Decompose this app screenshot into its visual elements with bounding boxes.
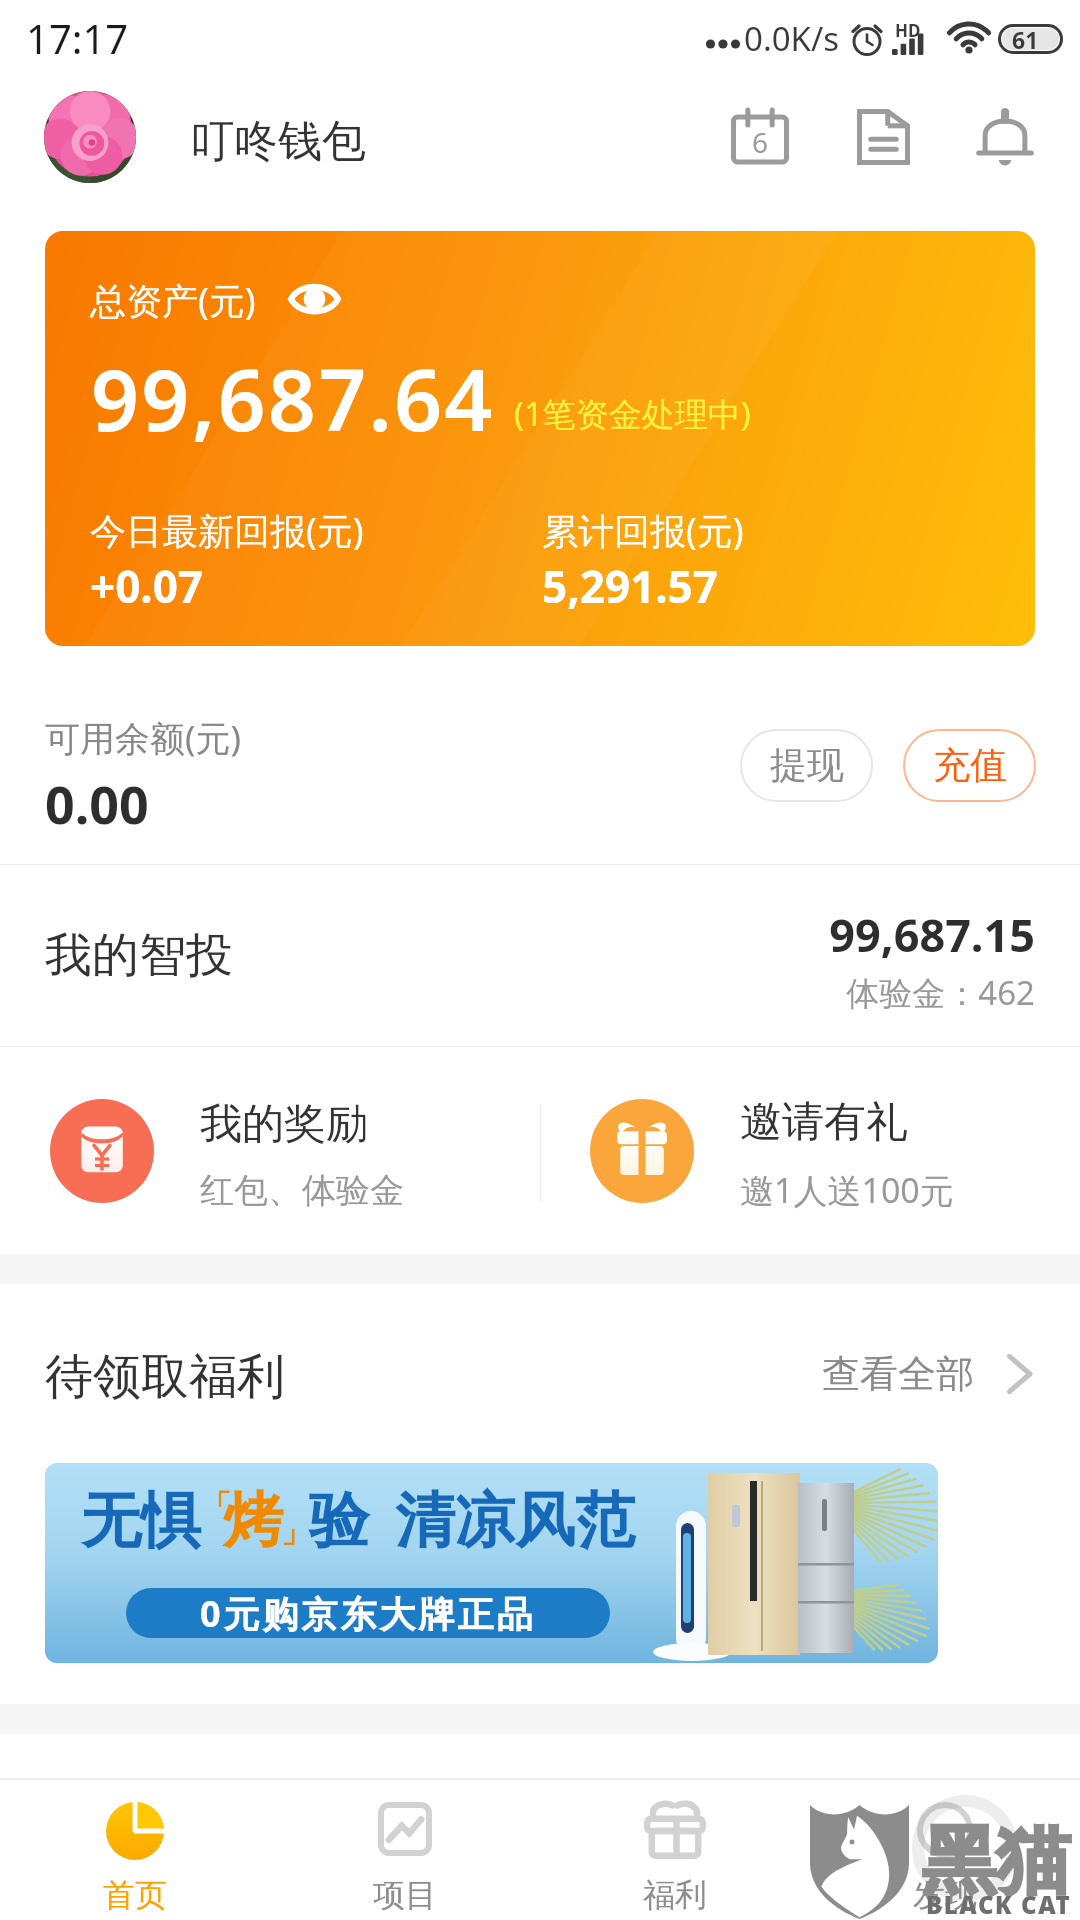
staticText: HD [895,19,921,42]
staticText: 验 [309,1483,369,1559]
staticText: BLACK CAT [926,1888,1072,1920]
staticText: 叮咚钱包 [190,114,366,169]
staticText: +0.07 [90,556,204,616]
staticText: 「 [201,1487,231,1525]
button[interactable]: 无惧 [45,1463,938,1663]
staticText: 总资产(元) [90,276,256,325]
staticText: 0元购京东大牌正品 [200,1589,536,1638]
button[interactable]: 福利 [540,1780,810,1920]
button[interactable]: 首页 [0,1780,270,1920]
button[interactable]: Toggle amount visibility [288,281,341,317]
staticText: 无惧 [81,1483,201,1559]
staticText: 烤 [223,1483,283,1559]
staticText: 我的智投 [45,926,233,985]
button[interactable]: 提现 [740,729,873,802]
staticText: 6 [752,123,769,161]
staticText: 可用余额(元) [45,714,242,762]
staticText: 5,291.57 [542,556,718,616]
staticText: 提现 [770,742,844,789]
staticText: 0.00 [45,768,149,839]
staticText: (1笔资金处理中) [514,391,751,436]
staticText: 邀请有礼 [740,1096,908,1149]
staticText: 充值 [933,742,1007,789]
staticText: 累计回报(元) [542,506,744,555]
staticText: 17:17 [26,11,129,65]
staticText: 查看全部 [822,1350,974,1398]
staticText: 体验金：462 [846,970,1035,1015]
button[interactable]: 项目 [270,1780,540,1920]
button[interactable]: 邀请有礼 [590,1047,1080,1254]
staticText: 我的奖励 [200,1098,368,1151]
button[interactable]: Calendar [719,96,801,178]
staticText: 」 [281,1513,311,1551]
staticText: 99,687.64 [91,341,495,455]
staticText: 黑猫 [922,1815,1070,1908]
staticText: 今日最新回报(元) [90,506,364,555]
button[interactable]: 发现 [810,1780,1080,1920]
button[interactable]: 查看全部 [822,1346,1036,1402]
staticText: 项目 [373,1875,437,1915]
staticText: 邀1人送100元 [740,1167,954,1213]
button[interactable]: Documents [842,96,924,178]
staticText: 发现 [913,1875,977,1915]
staticText: 红包、体验金 [200,1169,404,1212]
staticText: 清凉风范 [395,1483,635,1559]
button[interactable]: 我的奖励 [50,1047,540,1254]
staticText: 99,687.15 [829,904,1035,965]
button[interactable]: Notifications [964,96,1046,178]
staticText: 待领取福利 [45,1347,285,1407]
staticText: 首页 [103,1875,167,1915]
staticText: 0.0K/s [744,16,840,61]
button[interactable]: 我的智投 [0,865,1080,1046]
button[interactable]: 充值 [903,729,1036,802]
staticText: 61 [1012,24,1039,54]
staticText: 福利 [643,1875,707,1915]
